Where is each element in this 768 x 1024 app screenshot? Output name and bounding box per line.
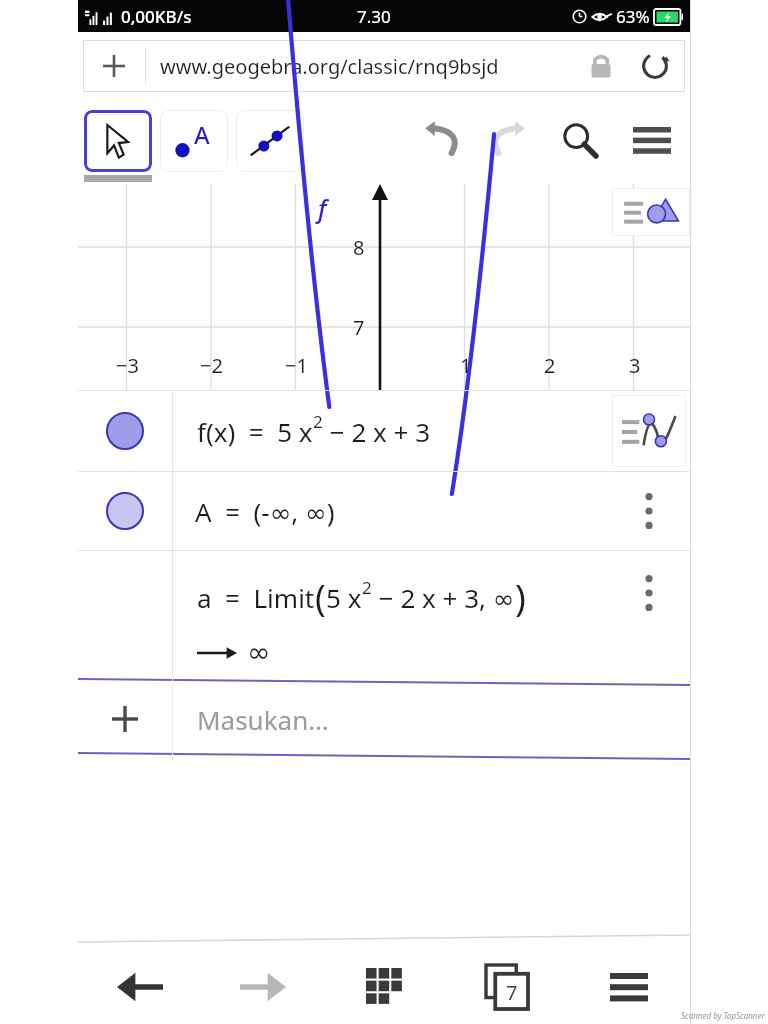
button[interactable]: Tabs [446, 949, 568, 1024]
button[interactable]: Point tool [160, 110, 228, 172]
button[interactable]: Apps [324, 949, 446, 1024]
button[interactable]: Undo [412, 114, 472, 168]
button[interactable]: Graphics settings [612, 188, 690, 236]
staticText: A = (-∞, ∞) [195, 494, 335, 529]
staticText: 2 [362, 576, 372, 599]
button[interactable]: Hide object [78, 391, 690, 471]
button[interactable]: Line tool [236, 110, 304, 172]
button[interactable]: Menu [568, 949, 690, 1024]
staticText: 0,00KB/s [121, 5, 192, 28]
staticText: 3 [629, 352, 641, 379]
button[interactable]: Add input [78, 676, 690, 762]
button[interactable]: Forward [201, 949, 324, 1024]
button[interactable]: Move tool [84, 110, 152, 172]
button[interactable]: Secure [577, 40, 625, 92]
button[interactable]: New tab [83, 40, 685, 92]
staticText: ) [515, 573, 526, 622]
staticText: −2 [200, 352, 223, 379]
button[interactable]: Add input [78, 676, 172, 762]
button[interactable]: Hide object [78, 391, 172, 471]
staticText: 8 [353, 234, 365, 261]
staticText: 63% [616, 5, 650, 28]
button[interactable]: Redo [478, 114, 538, 168]
button[interactable]: Search [550, 112, 610, 168]
staticText: 7 [506, 979, 518, 1006]
staticText: ( [315, 573, 326, 622]
staticText: − 2 x + 3, ∞ [372, 580, 515, 615]
staticText: Masukan… [197, 702, 329, 737]
button[interactable]: Function settings [612, 395, 686, 467]
staticText: ∞ [247, 636, 271, 669]
button[interactable]: Menu [620, 114, 684, 168]
staticText: 1 [460, 352, 472, 379]
button[interactable]: More options [608, 472, 690, 550]
staticText: 2 [313, 410, 323, 433]
staticText: f(x) = 5 x [197, 414, 313, 449]
button[interactable]: Show object [78, 472, 172, 550]
staticText: 7 [353, 314, 365, 341]
button[interactable]: a = Limit [78, 551, 690, 676]
staticText: − 2 x + 3 [323, 414, 431, 449]
staticText: −1 [285, 352, 308, 379]
button[interactable]: Back [78, 949, 201, 1024]
staticText: a = Limit [197, 580, 315, 615]
staticText: Scanned by TapScanner [681, 1010, 765, 1021]
staticText: 2 [544, 352, 556, 379]
button[interactable]: More options [608, 551, 690, 676]
button[interactable]: Reload [625, 40, 685, 92]
button[interactable]: Show object [78, 472, 690, 550]
staticText: f [318, 191, 327, 225]
staticText: A [194, 118, 210, 151]
staticText: −3 [116, 352, 139, 379]
staticText: 5 x [326, 580, 362, 615]
staticText: 7.30 [357, 5, 391, 28]
staticText: www.geogebra.org/classic/rnq9bsjd [160, 53, 577, 80]
button[interactable]: New tab [83, 40, 145, 92]
